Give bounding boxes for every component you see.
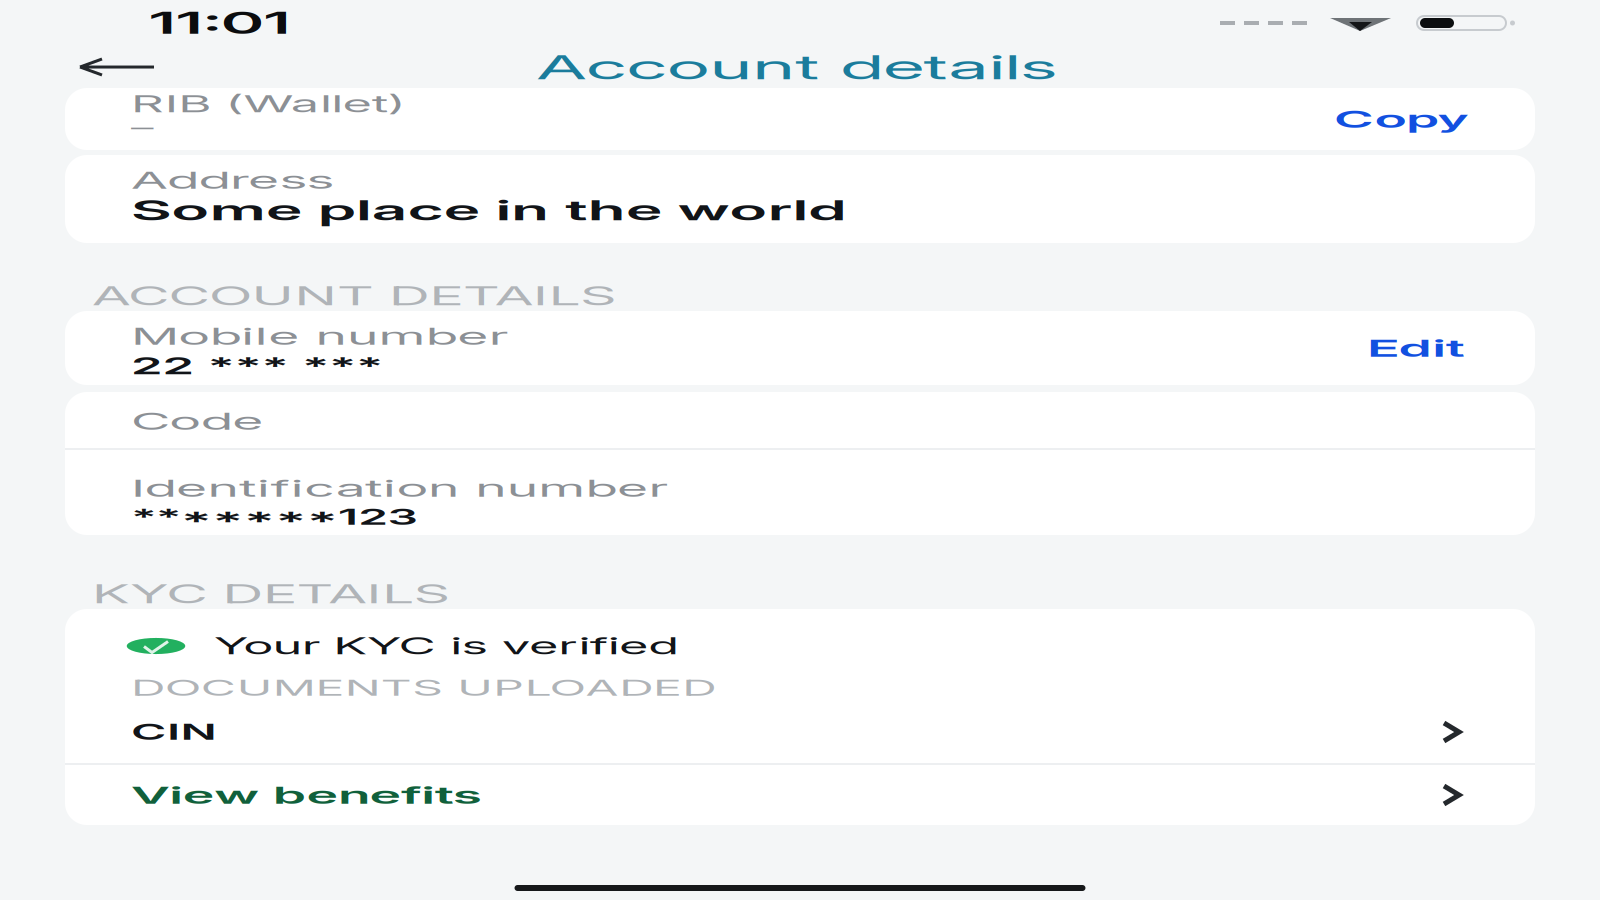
staticText: – xyxy=(131,115,141,139)
staticText: 11:01 xyxy=(149,5,212,41)
staticText: Code xyxy=(131,406,190,435)
staticText: RIB (Wallet) xyxy=(131,90,253,118)
staticText: Some place in the world xyxy=(131,193,449,227)
staticText: View benefits xyxy=(131,780,287,809)
button[interactable]: Edit xyxy=(1345,311,1481,385)
staticText: *******123 xyxy=(131,504,259,530)
button[interactable]: View benefits xyxy=(65,765,1535,825)
staticText: CIN xyxy=(131,719,169,745)
button[interactable]: Copy xyxy=(1312,88,1488,150)
staticText: Your KYC is verified xyxy=(214,632,421,660)
staticText: Account details xyxy=(536,47,768,87)
button[interactable]: CIN xyxy=(65,710,1535,763)
staticText: Copy xyxy=(1334,104,1394,133)
staticText: Identification number xyxy=(131,473,370,502)
staticText: Mobile number xyxy=(131,321,299,350)
staticText: 22 *** *** xyxy=(131,352,243,380)
button[interactable]: Back xyxy=(0,46,196,88)
staticText: Edit xyxy=(1367,333,1410,362)
staticText: Address xyxy=(131,165,221,194)
staticText: ACCOUNT DETAILS xyxy=(92,281,325,311)
staticText: KYC DETAILS xyxy=(92,579,251,609)
staticText: DOCUMENTS UPLOADED xyxy=(131,675,391,701)
